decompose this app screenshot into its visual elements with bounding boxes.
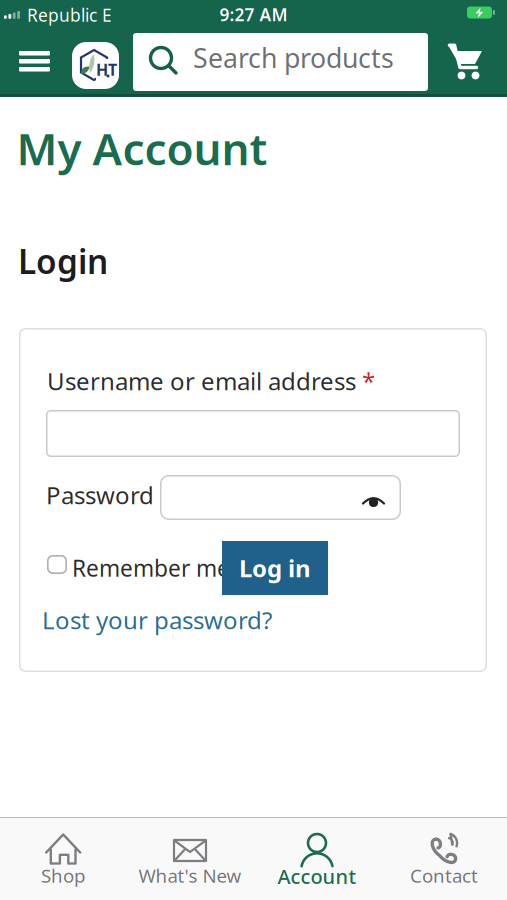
- button[interactable]: Account: [257, 817, 377, 900]
- button[interactable]: What's New: [130, 817, 250, 900]
- button[interactable]: Menu: [19, 51, 50, 71]
- staticText: My Account: [16, 119, 267, 177]
- staticText: Password: [46, 479, 154, 511]
- staticText: *: [160, 479, 173, 511]
- staticText: *: [362, 365, 375, 397]
- button[interactable]: Shop: [3, 817, 123, 900]
- staticText: Username or email address: [47, 365, 356, 397]
- button[interactable]: Lost your password?: [42, 604, 272, 636]
- staticText: Contact: [410, 863, 478, 888]
- staticText: Remember me: [72, 553, 230, 583]
- button[interactable]: Show password: [362, 495, 384, 508]
- button[interactable]: Log in: [222, 541, 328, 595]
- staticText: What's New: [138, 863, 241, 888]
- staticText: E: [102, 3, 112, 26]
- staticText: Log in: [239, 552, 311, 584]
- button[interactable]: Search products: [133, 33, 428, 91]
- button[interactable]: Remember me: [47, 552, 237, 582]
- staticText: HT: [96, 59, 117, 80]
- staticText: Republic: [27, 3, 97, 26]
- staticText: Lost your password?: [42, 604, 272, 636]
- button[interactable]: Contact: [384, 817, 504, 900]
- staticText: Login: [18, 239, 108, 283]
- staticText: 9:27 AM: [219, 3, 287, 26]
- button[interactable]: Cart: [447, 43, 487, 83]
- staticText: Shop: [41, 863, 85, 888]
- button[interactable]: Home: [72, 42, 119, 89]
- staticText: Search products: [193, 40, 394, 75]
- staticText: Account: [277, 863, 356, 890]
